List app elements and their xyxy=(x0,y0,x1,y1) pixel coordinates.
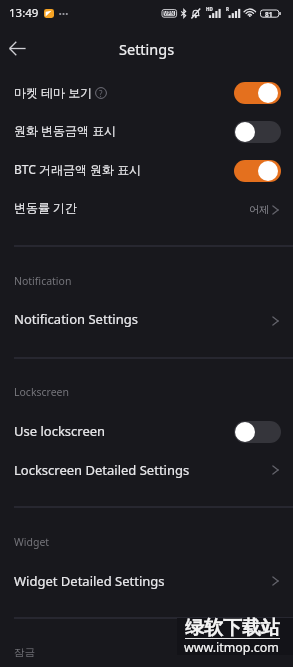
staticText: Lockscreen Detailed Settings xyxy=(14,461,190,479)
staticText: R xyxy=(226,6,229,12)
staticText: 13:49 xyxy=(9,5,39,21)
staticText: 원화 변동금액 표시 xyxy=(14,122,117,138)
staticText: 81 xyxy=(265,10,273,19)
staticText: Lockscreen xyxy=(14,385,70,399)
staticText: BTC 거래금액 원화 표시 xyxy=(14,161,142,177)
button[interactable]: Back xyxy=(2,33,32,63)
button[interactable] xyxy=(0,562,293,601)
staticText: Notification xyxy=(14,274,72,288)
button[interactable] xyxy=(0,190,293,227)
button[interactable] xyxy=(0,112,293,151)
staticText: Notification Settings xyxy=(14,310,138,328)
staticText: 변동률 기간 xyxy=(14,199,78,215)
staticText: ? xyxy=(99,88,103,99)
staticText: Use lockscreen xyxy=(14,422,106,440)
staticText: Widget Detailed Settings xyxy=(14,572,165,590)
button[interactable] xyxy=(0,73,293,112)
staticText: 어제 xyxy=(249,203,269,216)
staticText: HD xyxy=(206,6,213,12)
button[interactable] xyxy=(0,451,293,490)
staticText: Settings xyxy=(119,39,175,59)
button[interactable]: Switch on xyxy=(234,82,281,104)
staticText: 绿软下载站 xyxy=(185,616,280,640)
staticText: 마켓 테마 보기 xyxy=(14,84,93,100)
button[interactable]: Switch on xyxy=(234,160,281,182)
button[interactable]: Switch off xyxy=(234,121,281,143)
button[interactable] xyxy=(0,302,293,341)
staticText: VPN xyxy=(164,10,175,17)
button[interactable] xyxy=(0,412,293,451)
staticText: Widget xyxy=(14,535,50,549)
staticText: 잠금 xyxy=(14,646,35,659)
button[interactable] xyxy=(0,151,293,190)
staticText: www.itmop.com xyxy=(184,639,279,656)
button[interactable]: Switch off xyxy=(234,421,281,443)
